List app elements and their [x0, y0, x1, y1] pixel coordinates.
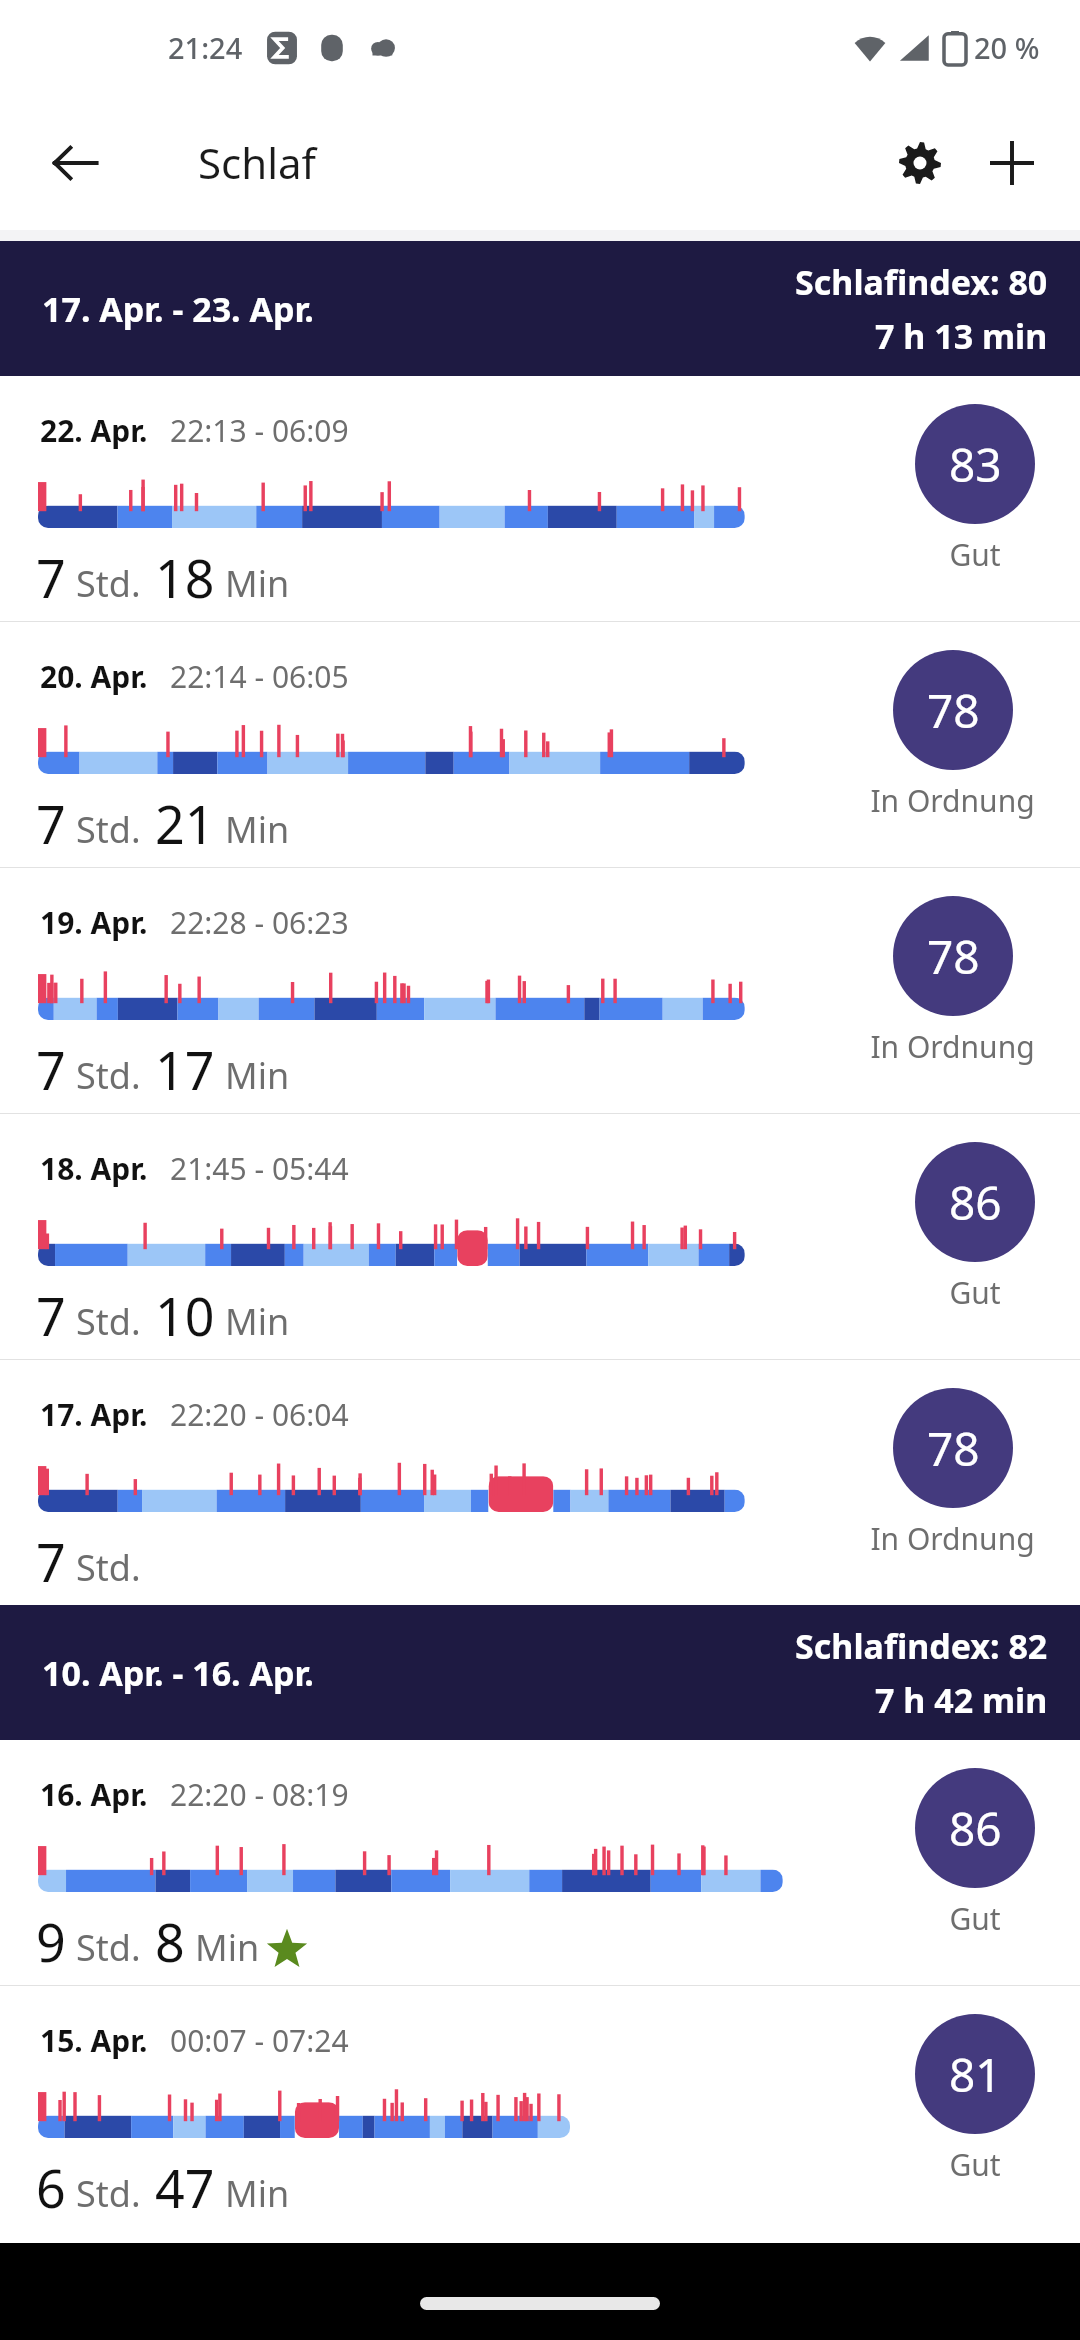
- staticText: Std.: [76, 1297, 141, 1346]
- button[interactable]: 20. Apr.: [0, 622, 1080, 867]
- staticText: Min: [195, 1923, 260, 1972]
- staticText: Min: [225, 805, 290, 854]
- staticText: In Ordnung: [870, 1518, 1035, 1559]
- staticText: Schlafindex: 80: [795, 259, 1048, 305]
- staticText: 22. Apr.: [40, 410, 148, 451]
- staticText: Min: [225, 2169, 290, 2218]
- staticText: 7 h 13 min: [875, 313, 1048, 359]
- staticText: 10: [155, 1280, 215, 1351]
- staticText: 21: [155, 788, 215, 859]
- staticText: Std.: [76, 1051, 141, 1100]
- staticText: 22:20 - 06:04: [170, 1394, 349, 1435]
- button[interactable]: Zurück: [30, 118, 120, 208]
- staticText: 20. Apr.: [40, 656, 148, 697]
- button[interactable]: Hinzufügen: [966, 117, 1058, 209]
- staticText: 7: [36, 542, 66, 613]
- staticText: 21:45 - 05:44: [170, 1148, 349, 1189]
- staticText: 78: [927, 1417, 980, 1480]
- staticText: 17. Apr. - 23. Apr.: [42, 286, 314, 332]
- button[interactable]: 17. Apr. - 23. Apr.: [0, 241, 1080, 376]
- staticText: Min: [225, 1051, 290, 1100]
- staticText: Gut: [949, 1272, 1001, 1313]
- button[interactable]: 17. Apr.: [0, 1360, 1080, 1605]
- staticText: 19. Apr.: [40, 902, 148, 943]
- staticText: 7: [36, 1280, 66, 1351]
- staticText: Std.: [76, 559, 141, 608]
- staticText: 18. Apr.: [40, 1148, 148, 1189]
- staticText: 16. Apr.: [40, 1774, 148, 1815]
- staticText: 22:28 - 06:23: [170, 902, 349, 943]
- staticText: 21:24: [168, 28, 243, 67]
- button[interactable]: 16. Apr.: [0, 1740, 1080, 1985]
- button[interactable]: 18. Apr.: [0, 1114, 1080, 1359]
- staticText: 18: [155, 542, 215, 613]
- staticText: 10. Apr. - 16. Apr.: [42, 1650, 314, 1696]
- staticText: 22:14 - 06:05: [170, 656, 349, 697]
- staticText: 7: [36, 1034, 66, 1105]
- button[interactable]: 15. Apr.: [0, 1986, 1080, 2231]
- staticText: 6: [36, 2152, 66, 2223]
- staticText: 20 %: [974, 28, 1040, 67]
- staticText: 47: [155, 2152, 215, 2223]
- staticText: 9: [36, 1906, 66, 1977]
- staticText: 7 h 42 min: [875, 1677, 1048, 1723]
- staticText: In Ordnung: [870, 1026, 1035, 1067]
- staticText: Schlafindex: 82: [795, 1623, 1048, 1669]
- staticText: Std.: [76, 1543, 141, 1592]
- button[interactable]: 19. Apr.: [0, 868, 1080, 1113]
- staticText: Std.: [76, 2169, 141, 2218]
- staticText: 17. Apr.: [40, 1394, 148, 1435]
- staticText: In Ordnung: [870, 780, 1035, 821]
- staticText: 86: [949, 1171, 1002, 1234]
- staticText: Std.: [76, 805, 141, 854]
- staticText: 00:07 - 07:24: [170, 2020, 349, 2061]
- button[interactable]: 10. Apr. - 16. Apr.: [0, 1605, 1080, 1740]
- staticText: Gut: [949, 1898, 1001, 1939]
- staticText: Min: [225, 1297, 290, 1346]
- staticText: 78: [927, 679, 980, 742]
- staticText: 86: [949, 1797, 1002, 1860]
- staticText: 8: [155, 1906, 185, 1977]
- staticText: Schlaf: [198, 134, 317, 191]
- staticText: Min: [225, 559, 290, 608]
- button[interactable]: 22. Apr.: [0, 376, 1080, 621]
- staticText: 22:20 - 08:19: [170, 1774, 349, 1815]
- staticText: Std.: [76, 1923, 141, 1972]
- staticText: 83: [949, 433, 1002, 496]
- staticText: 15. Apr.: [40, 2020, 148, 2061]
- staticText: 81: [949, 2043, 1002, 2106]
- staticText: Gut: [949, 534, 1001, 575]
- staticText: 78: [927, 925, 980, 988]
- staticText: 7: [36, 1526, 66, 1597]
- staticText: 22:13 - 06:09: [170, 410, 349, 451]
- staticText: 7: [36, 788, 66, 859]
- button[interactable]: Einstellungen: [874, 117, 966, 209]
- staticText: Gut: [949, 2144, 1001, 2185]
- staticText: 17: [155, 1034, 215, 1105]
